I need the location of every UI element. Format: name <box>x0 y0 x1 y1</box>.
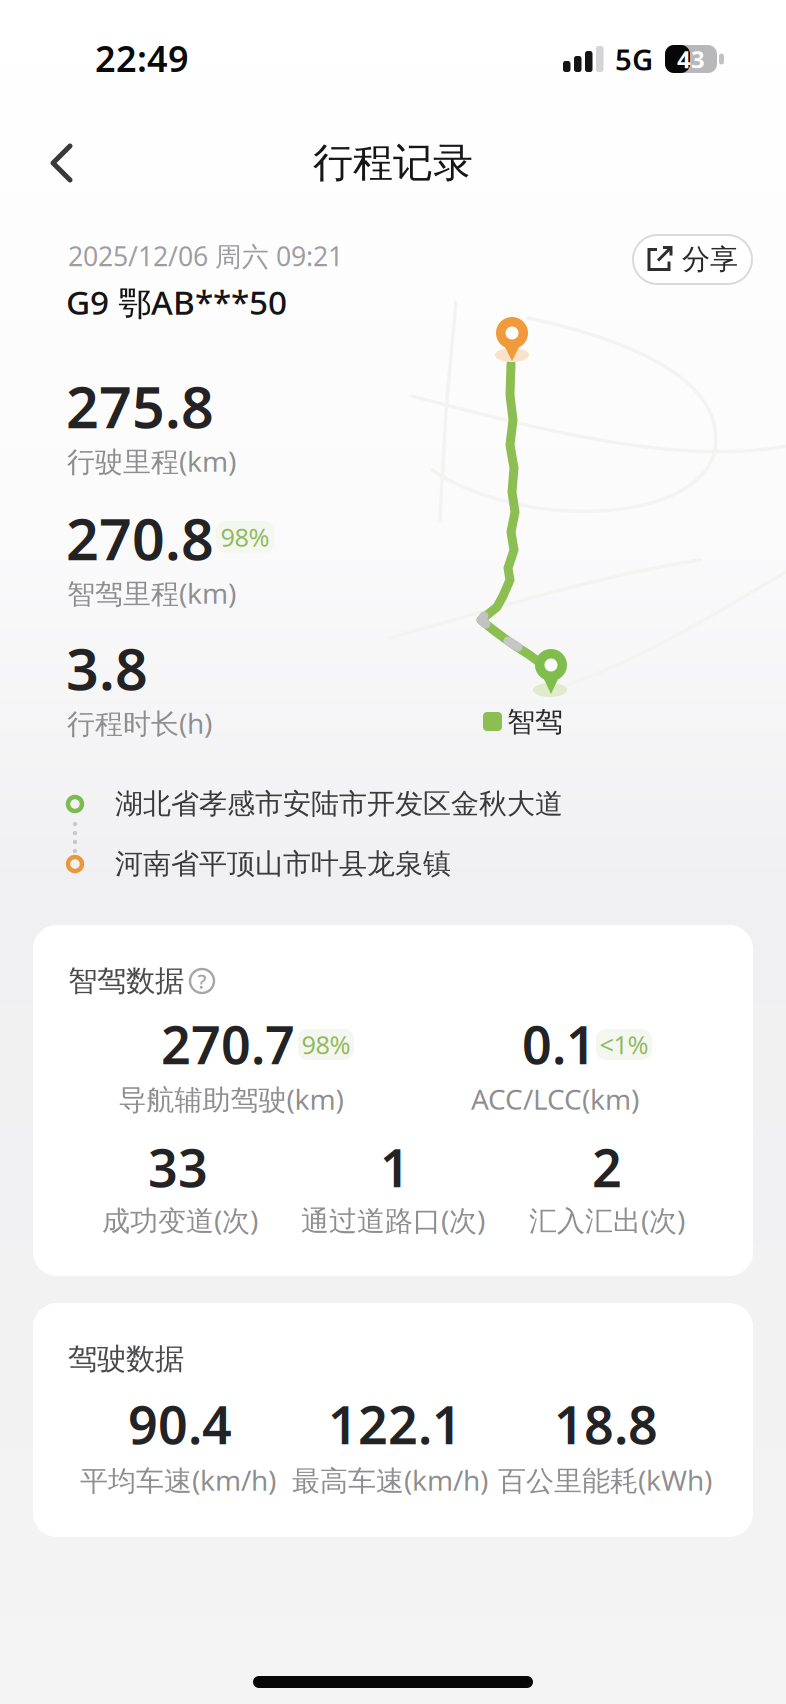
staticText: 分享 <box>682 242 738 277</box>
staticText: 5G <box>615 39 653 78</box>
staticText: 汇入汇出(次) <box>529 1201 685 1239</box>
staticText: 1 <box>380 1132 410 1202</box>
staticText: 22:49 <box>95 34 189 82</box>
button[interactable]: 智驾数据说明 <box>188 967 216 995</box>
staticText: 驾驶数据 <box>68 1341 184 1377</box>
staticText: 行程时长(h) <box>67 704 212 742</box>
staticText: 2 <box>592 1132 622 1202</box>
staticText: 行驶里程(km) <box>67 442 236 480</box>
staticText: 98% <box>220 520 269 554</box>
staticText: 33 <box>148 1132 208 1202</box>
staticText: ? <box>197 968 206 994</box>
staticText: 成功变道(次) <box>102 1201 258 1239</box>
staticText: 湖北省孝感市安陆市开发区金秋大道 <box>115 787 563 821</box>
staticText: ACC/LCC(km) <box>471 1080 639 1118</box>
button[interactable]: 返回 <box>30 131 94 195</box>
staticText: 导航辅助驾驶(km) <box>118 1080 343 1118</box>
staticText: 通过道路口(次) <box>301 1201 485 1239</box>
staticText: 275.8 <box>66 368 214 444</box>
staticText: 河南省平顶山市叶县龙泉镇 <box>115 847 451 881</box>
staticText: 18.8 <box>554 1389 658 1459</box>
staticText: 43 <box>677 43 705 75</box>
staticText: 3.8 <box>66 630 148 706</box>
staticText: 智驾 <box>507 705 563 739</box>
staticText: 2025/12/06 周六 09:21 <box>68 238 343 274</box>
staticText: 百公里能耗(kWh) <box>498 1461 712 1499</box>
staticText: 智驾数据 <box>68 963 184 999</box>
staticText: 122.1 <box>328 1389 462 1459</box>
staticText: 98% <box>301 1028 350 1061</box>
staticText: 智驾里程(km) <box>67 574 236 612</box>
staticText: G9 鄂AB***50 <box>66 280 287 324</box>
staticText: 90.4 <box>128 1389 232 1459</box>
button[interactable]: 分享 <box>633 235 752 284</box>
staticText: 270.7 <box>161 1009 295 1079</box>
staticText: <1% <box>599 1028 648 1061</box>
staticText: 最高车速(km/h) <box>292 1461 488 1499</box>
staticText: 平均车速(km/h) <box>80 1461 276 1499</box>
staticText: 0.1 <box>522 1009 596 1079</box>
staticText: 270.8 <box>66 500 214 576</box>
staticText: 行程记录 <box>313 138 473 187</box>
